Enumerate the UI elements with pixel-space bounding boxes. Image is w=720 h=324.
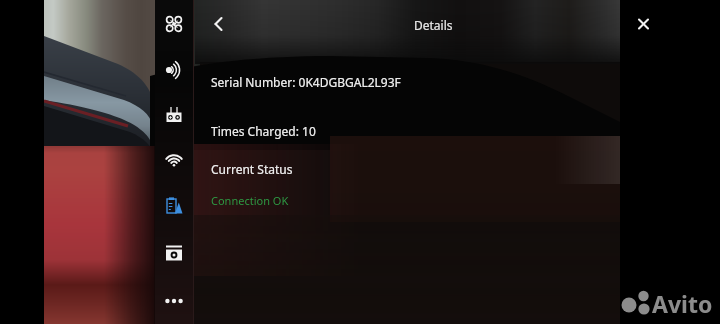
button[interactable]: Close (624, 4, 662, 42)
button[interactable]: Aircraft (155, 4, 194, 46)
staticText: Times Charged: 10 (211, 123, 316, 139)
staticText: Current Status (211, 161, 293, 177)
staticText: Details (414, 17, 453, 33)
staticText: Avito (652, 288, 713, 319)
staticText: Serial Number: 0K4DGBGAL2L93F (211, 74, 401, 90)
button[interactable]: Camera (155, 232, 194, 274)
button[interactable]: Remote Controller (155, 94, 194, 136)
button[interactable]: Battery (155, 185, 194, 227)
button[interactable]: Transmission (155, 50, 194, 92)
button[interactable]: More (155, 280, 194, 322)
staticText: Connection OK (211, 193, 289, 208)
button[interactable]: Back (202, 4, 240, 42)
button[interactable]: WiFi (155, 140, 194, 182)
